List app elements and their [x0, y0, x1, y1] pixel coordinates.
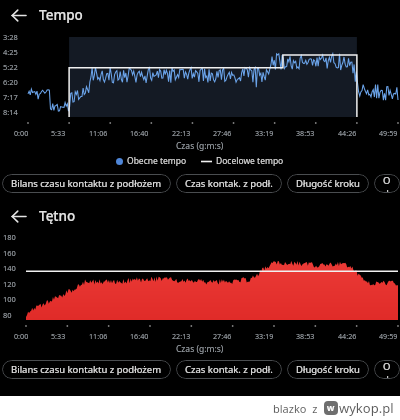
staticText: 44:26 — [338, 331, 357, 341]
button[interactable]: Czas kontak. z podł. — [176, 174, 282, 193]
staticText: Docelowe tempo — [216, 155, 284, 167]
staticText: 6:20 — [3, 77, 18, 87]
staticText: 5:33 — [51, 331, 66, 341]
button[interactable]: Czas kontak. z podł. — [176, 360, 282, 379]
staticText: 38:53 — [296, 331, 315, 341]
staticText: Odchylen — [383, 174, 391, 193]
staticText: 33:19 — [255, 128, 274, 138]
staticText: 80 — [3, 310, 12, 320]
staticText: Tętno — [39, 207, 76, 225]
staticText: 0:00 — [14, 128, 29, 138]
staticText: 22:13 — [172, 331, 191, 341]
staticText: Długość kroku — [296, 363, 360, 376]
staticText: Czas (g:m:s) — [176, 343, 224, 355]
staticText: 3:28 — [3, 32, 18, 42]
staticText: 16:40 — [130, 128, 149, 138]
button[interactable]: Bilans czasu kontaktu z podłożem — [2, 360, 171, 379]
staticText: Obecne tempo — [127, 155, 187, 167]
button[interactable]: Długość kroku — [287, 174, 369, 193]
staticText: 49:59 — [379, 331, 398, 341]
staticText: W — [327, 403, 335, 413]
staticText: Długość kroku — [296, 177, 360, 190]
staticText: Czas kontak. z podł. — [185, 177, 273, 190]
staticText: Tempo — [39, 6, 83, 24]
staticText: blazko z — [273, 401, 318, 416]
button[interactable]: Bilans czasu kontaktu z podłożem — [2, 174, 171, 193]
staticText: 100 — [3, 294, 16, 304]
staticText: 7:17 — [3, 92, 18, 102]
staticText: 16:40 — [130, 331, 149, 341]
staticText: 27:46 — [213, 128, 232, 138]
staticText: 5:33 — [51, 128, 66, 138]
button[interactable]: Back — [4, 202, 32, 230]
staticText: 4:25 — [3, 47, 18, 57]
staticText: Czas kontak. z podł. — [185, 363, 273, 376]
button[interactable]: Back — [4, 1, 32, 29]
staticText: 8:14 — [3, 107, 18, 117]
staticText: 33:19 — [255, 331, 274, 341]
staticText: wykop.pl — [339, 399, 394, 417]
staticText: Odchylen — [383, 360, 391, 379]
staticText: 140 — [3, 263, 16, 273]
staticText: 49:59 — [379, 128, 398, 138]
button[interactable]: Odchylen — [374, 360, 400, 379]
button[interactable]: Odchylen — [374, 174, 400, 193]
staticText: 38:53 — [296, 128, 315, 138]
staticText: Bilans czasu kontaktu z podłożem — [11, 177, 162, 190]
staticText: 5:22 — [3, 62, 18, 72]
staticText: 160 — [3, 248, 16, 258]
staticText: 0:00 — [14, 331, 29, 341]
staticText: 44:26 — [338, 128, 357, 138]
staticText: 11:06 — [89, 331, 108, 341]
staticText: Bilans czasu kontaktu z podłożem — [11, 363, 162, 376]
staticText: 120 — [3, 279, 16, 289]
staticText: 27:46 — [213, 331, 232, 341]
staticText: 180 — [3, 232, 16, 242]
staticText: Czas (g:m:s) — [176, 140, 224, 152]
button[interactable]: Długość kroku — [287, 360, 369, 379]
staticText: 11:06 — [89, 128, 108, 138]
staticText: 22:13 — [172, 128, 191, 138]
